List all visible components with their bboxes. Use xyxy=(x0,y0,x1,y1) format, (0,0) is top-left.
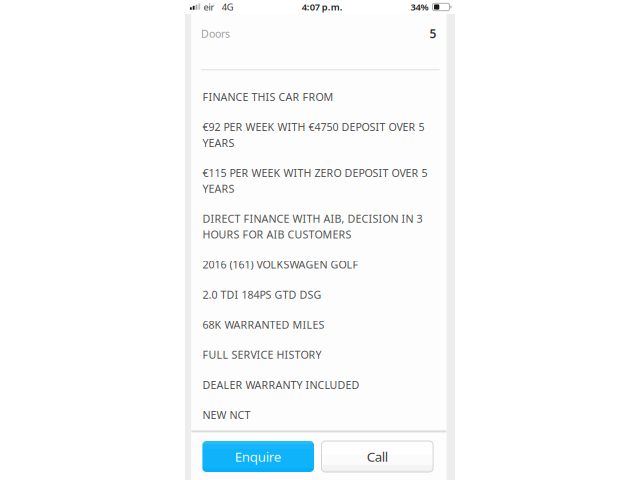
staticText: NEW NCT xyxy=(202,408,250,422)
staticText: 5 xyxy=(430,26,437,42)
staticText: 34% xyxy=(410,1,428,13)
staticText: Enquire xyxy=(235,448,282,465)
button[interactable]: Enquire xyxy=(202,441,314,472)
staticText: €115 PER WEEK WITH ZERO DEPOSIT OVER 5 Y… xyxy=(202,166,427,196)
button[interactable]: Call xyxy=(321,441,433,472)
staticText: FULL SERVICE HISTORY xyxy=(202,348,321,362)
staticText: Doors xyxy=(201,27,230,41)
staticText: FINANCE THIS CAR FROM xyxy=(202,90,333,104)
staticText: DIRECT FINANCE WITH AIB, DECISION IN 3 H… xyxy=(202,212,422,241)
staticText: €92 PER WEEK WITH €4750 DEPOSIT OVER 5 Y… xyxy=(202,120,424,150)
staticText: 2.0 TDI 184PS GTD DSG xyxy=(202,287,321,302)
staticText: 68K WARRANTED MILES xyxy=(202,317,324,332)
staticText: Call xyxy=(367,448,388,465)
staticText: 4:07 p.m. xyxy=(302,1,343,13)
staticText: DEALER WARRANTY INCLUDED xyxy=(202,378,359,392)
staticText: eir xyxy=(204,1,215,13)
staticText: 4G xyxy=(222,1,234,13)
staticText: 2016 (161) VOLKSWAGEN GOLF xyxy=(202,257,358,272)
